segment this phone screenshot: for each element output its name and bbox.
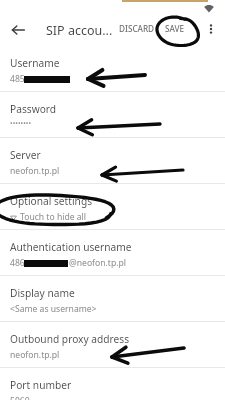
staticText: Touch to hide all <box>20 211 87 223</box>
other: Wi-Fi <box>203 3 215 15</box>
button[interactable]: Outbound proxy address <box>0 322 225 367</box>
button[interactable]: Authentication username <box>0 230 225 275</box>
staticText: Outbound proxy address <box>10 332 130 346</box>
staticText: 486 <box>10 257 25 269</box>
staticText: 5060 <box>10 395 30 400</box>
staticText: neofon.tp.pl <box>10 349 60 361</box>
staticText: SAVE <box>165 23 185 34</box>
staticText: Optional settings <box>10 194 93 208</box>
button[interactable]: Optional settings <box>0 184 225 229</box>
button[interactable]: DISCARD <box>117 19 157 38</box>
staticText: Server <box>10 148 41 162</box>
button[interactable]: Back <box>8 20 28 40</box>
button[interactable]: Display name <box>0 276 225 321</box>
staticText: 485 <box>10 73 25 85</box>
staticText: SIP accou... <box>46 22 113 39</box>
staticText: DISCARD <box>119 23 155 34</box>
staticText: Password <box>10 102 57 116</box>
staticText: •••••••• <box>10 119 32 129</box>
button[interactable]: Password <box>0 92 225 137</box>
button[interactable]: Username <box>0 46 225 91</box>
staticText: Port number <box>10 378 72 392</box>
staticText: Username <box>10 56 60 70</box>
staticText: neofon.tp.pl <box>10 165 60 177</box>
button[interactable]: Port number <box>0 368 225 400</box>
button[interactable]: Server <box>0 138 225 183</box>
staticText: Display name <box>10 286 75 300</box>
staticText: <Same as username> <box>10 303 97 315</box>
button[interactable]: More options <box>202 20 220 38</box>
button[interactable]: SAVE <box>163 19 187 38</box>
staticText: Authentication username <box>10 240 132 254</box>
staticText: @neofon.tp.pl <box>69 257 127 269</box>
